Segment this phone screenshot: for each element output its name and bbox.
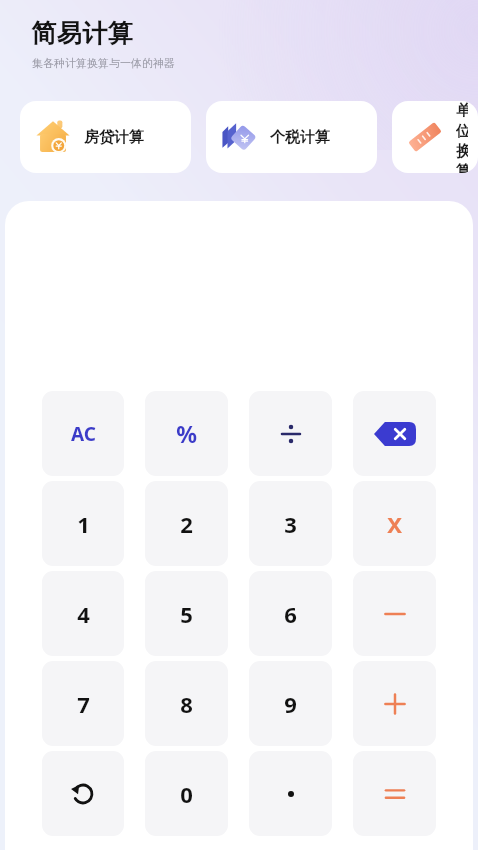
- button[interactable]: 9: [249, 661, 332, 746]
- staticText: 0: [180, 779, 193, 809]
- button[interactable]: 单位换算: [392, 101, 478, 173]
- button[interactable]: Undo: [42, 751, 124, 836]
- button[interactable]: Plus: [353, 661, 436, 746]
- button[interactable]: 2: [145, 481, 228, 566]
- button[interactable]: 4: [42, 571, 124, 656]
- button[interactable]: %: [145, 391, 228, 476]
- button[interactable]: 1: [42, 481, 124, 566]
- button[interactable]: 个税计算: [206, 101, 377, 173]
- other: Minus: [382, 601, 408, 627]
- staticText: 8: [180, 689, 193, 719]
- button[interactable]: X: [353, 481, 436, 566]
- staticText: 4: [77, 599, 90, 629]
- staticText: X: [387, 509, 402, 539]
- staticText: 5: [180, 599, 193, 629]
- other: Plus: [382, 691, 408, 717]
- button[interactable]: 5: [145, 571, 228, 656]
- staticText: 9: [284, 689, 297, 719]
- staticText: 房贷计算: [84, 128, 144, 147]
- other: Backspace: [374, 422, 416, 446]
- staticText: 个税计算: [270, 128, 330, 147]
- button[interactable]: Divide: [249, 391, 332, 476]
- button[interactable]: Equals: [353, 751, 436, 836]
- button[interactable]: 7: [42, 661, 124, 746]
- button[interactable]: 0: [145, 751, 228, 836]
- button[interactable]: 6: [249, 571, 332, 656]
- staticText: 单位换算: [456, 101, 468, 173]
- button[interactable]: Backspace: [353, 391, 436, 476]
- other: Divide: [276, 419, 306, 449]
- button[interactable]: Minus: [353, 571, 436, 656]
- staticText: AC: [71, 421, 96, 447]
- staticText: 3: [284, 509, 297, 539]
- staticText: %: [176, 418, 197, 449]
- button[interactable]: 3: [249, 481, 332, 566]
- staticText: 1: [77, 509, 90, 539]
- other: Undo: [69, 780, 97, 808]
- button[interactable]: AC: [42, 391, 124, 476]
- other: Decimal point: [281, 784, 301, 804]
- staticText: 7: [77, 689, 90, 719]
- staticText: 2: [180, 509, 193, 539]
- button[interactable]: 房贷计算: [20, 101, 191, 173]
- staticText: 6: [284, 599, 297, 629]
- other: Equals: [382, 781, 408, 807]
- staticText: 简易计算: [31, 18, 133, 49]
- button[interactable]: Decimal point: [249, 751, 332, 836]
- button[interactable]: 8: [145, 661, 228, 746]
- staticText: 集各种计算换算与一体的神器: [32, 56, 175, 70]
